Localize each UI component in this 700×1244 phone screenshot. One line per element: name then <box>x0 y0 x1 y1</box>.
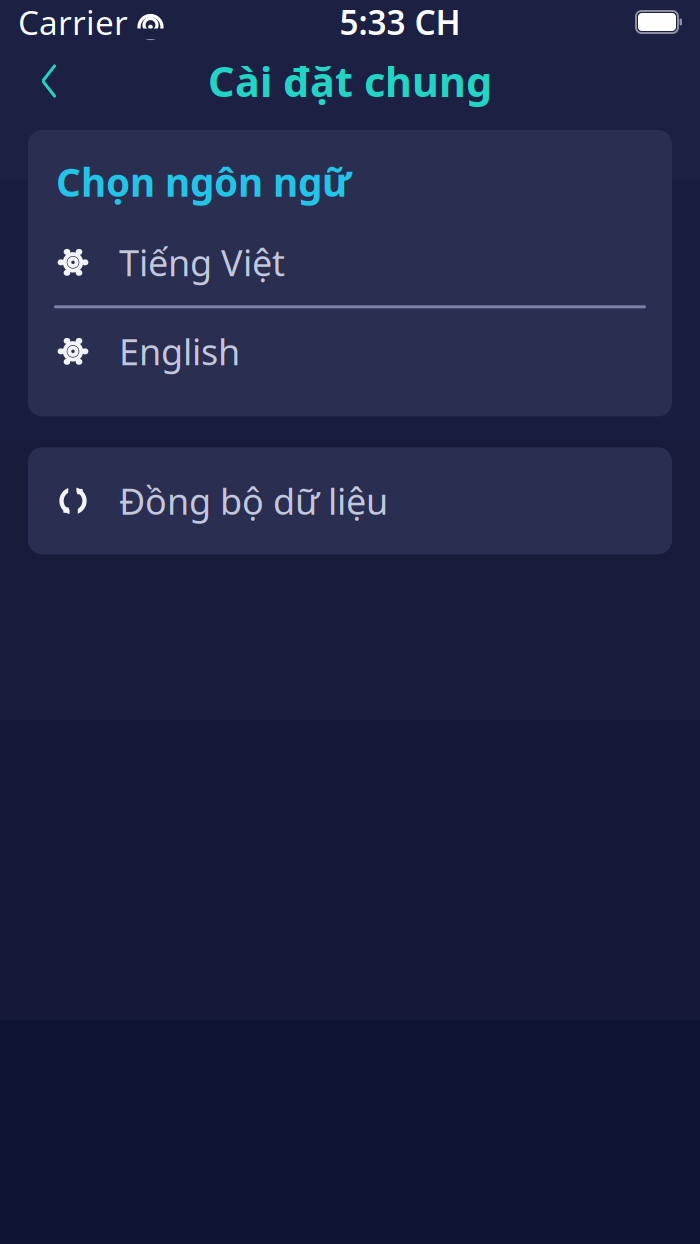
staticText: Chọn ngôn ngữ <box>56 156 351 207</box>
staticText: 5:33 CH <box>339 0 460 44</box>
staticText: Đồng bộ dữ liệu <box>119 477 388 525</box>
button[interactable]: English <box>28 308 672 394</box>
staticText: Carrier <box>18 0 128 44</box>
button[interactable]: Tiếng Việt <box>28 219 672 305</box>
staticText: Cài đặt chung <box>208 54 492 108</box>
staticText: English <box>119 327 240 375</box>
button[interactable]: Đồng bộ dữ liệu <box>28 447 672 554</box>
button[interactable]: Back <box>20 52 78 110</box>
staticText: Tiếng Việt <box>119 238 285 286</box>
